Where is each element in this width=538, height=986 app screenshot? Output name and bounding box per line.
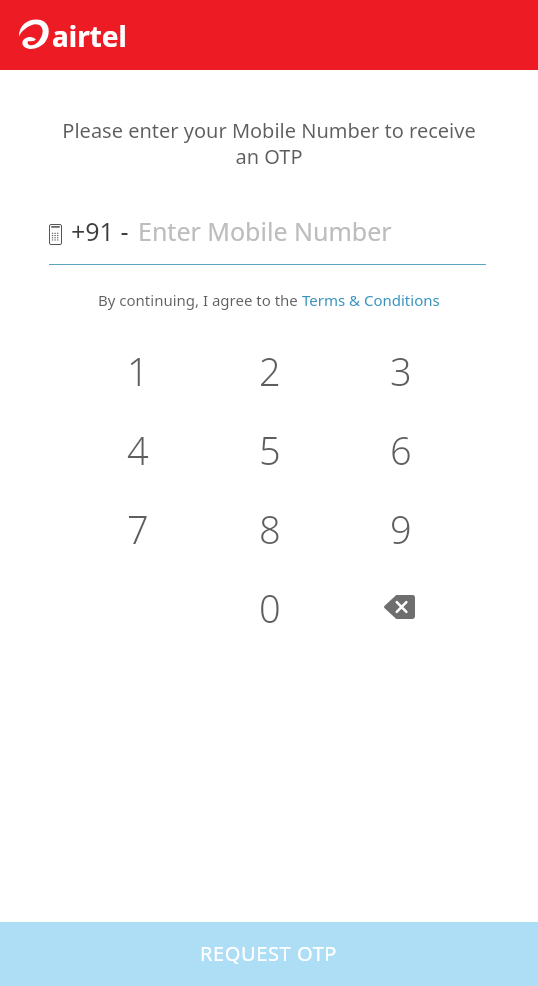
button[interactable]: 3	[335, 331, 466, 410]
staticText: REQUEST OTP	[200, 940, 338, 967]
button[interactable]: 5	[204, 410, 335, 489]
staticText: airtel	[52, 17, 127, 55]
staticText: Please enter your Mobile Number to recei…	[56, 117, 482, 170]
button[interactable]: 8	[204, 489, 335, 568]
staticText: 0	[259, 582, 281, 634]
staticText: 5	[259, 424, 281, 476]
staticText: 8	[259, 503, 281, 555]
button[interactable]: 9	[335, 489, 466, 568]
button[interactable]: +91 -	[49, 214, 486, 265]
staticText: +91 -	[71, 214, 129, 244]
staticText: 2	[259, 345, 281, 397]
button[interactable]: 4	[72, 410, 204, 489]
button[interactable]: 2	[204, 331, 335, 410]
button[interactable]: 1	[72, 331, 204, 410]
button[interactable]: Backspace	[335, 568, 466, 647]
button[interactable]: Terms & Conditions	[302, 290, 440, 310]
staticText: 1	[127, 345, 149, 397]
staticText: 6	[390, 424, 412, 476]
staticText: Enter Mobile Number	[138, 214, 392, 244]
button[interactable]: REQUEST OTP	[0, 922, 538, 986]
staticText: By continuing, I agree to the	[98, 290, 302, 310]
button[interactable]: 0	[204, 568, 335, 647]
button[interactable]: 7	[72, 489, 204, 568]
staticText: 9	[390, 503, 412, 555]
button[interactable]: airtel	[19, 20, 129, 58]
staticText: 3	[390, 345, 412, 397]
staticText: 7	[127, 503, 149, 555]
staticText: 4	[127, 424, 149, 476]
button[interactable]: 6	[335, 410, 466, 489]
